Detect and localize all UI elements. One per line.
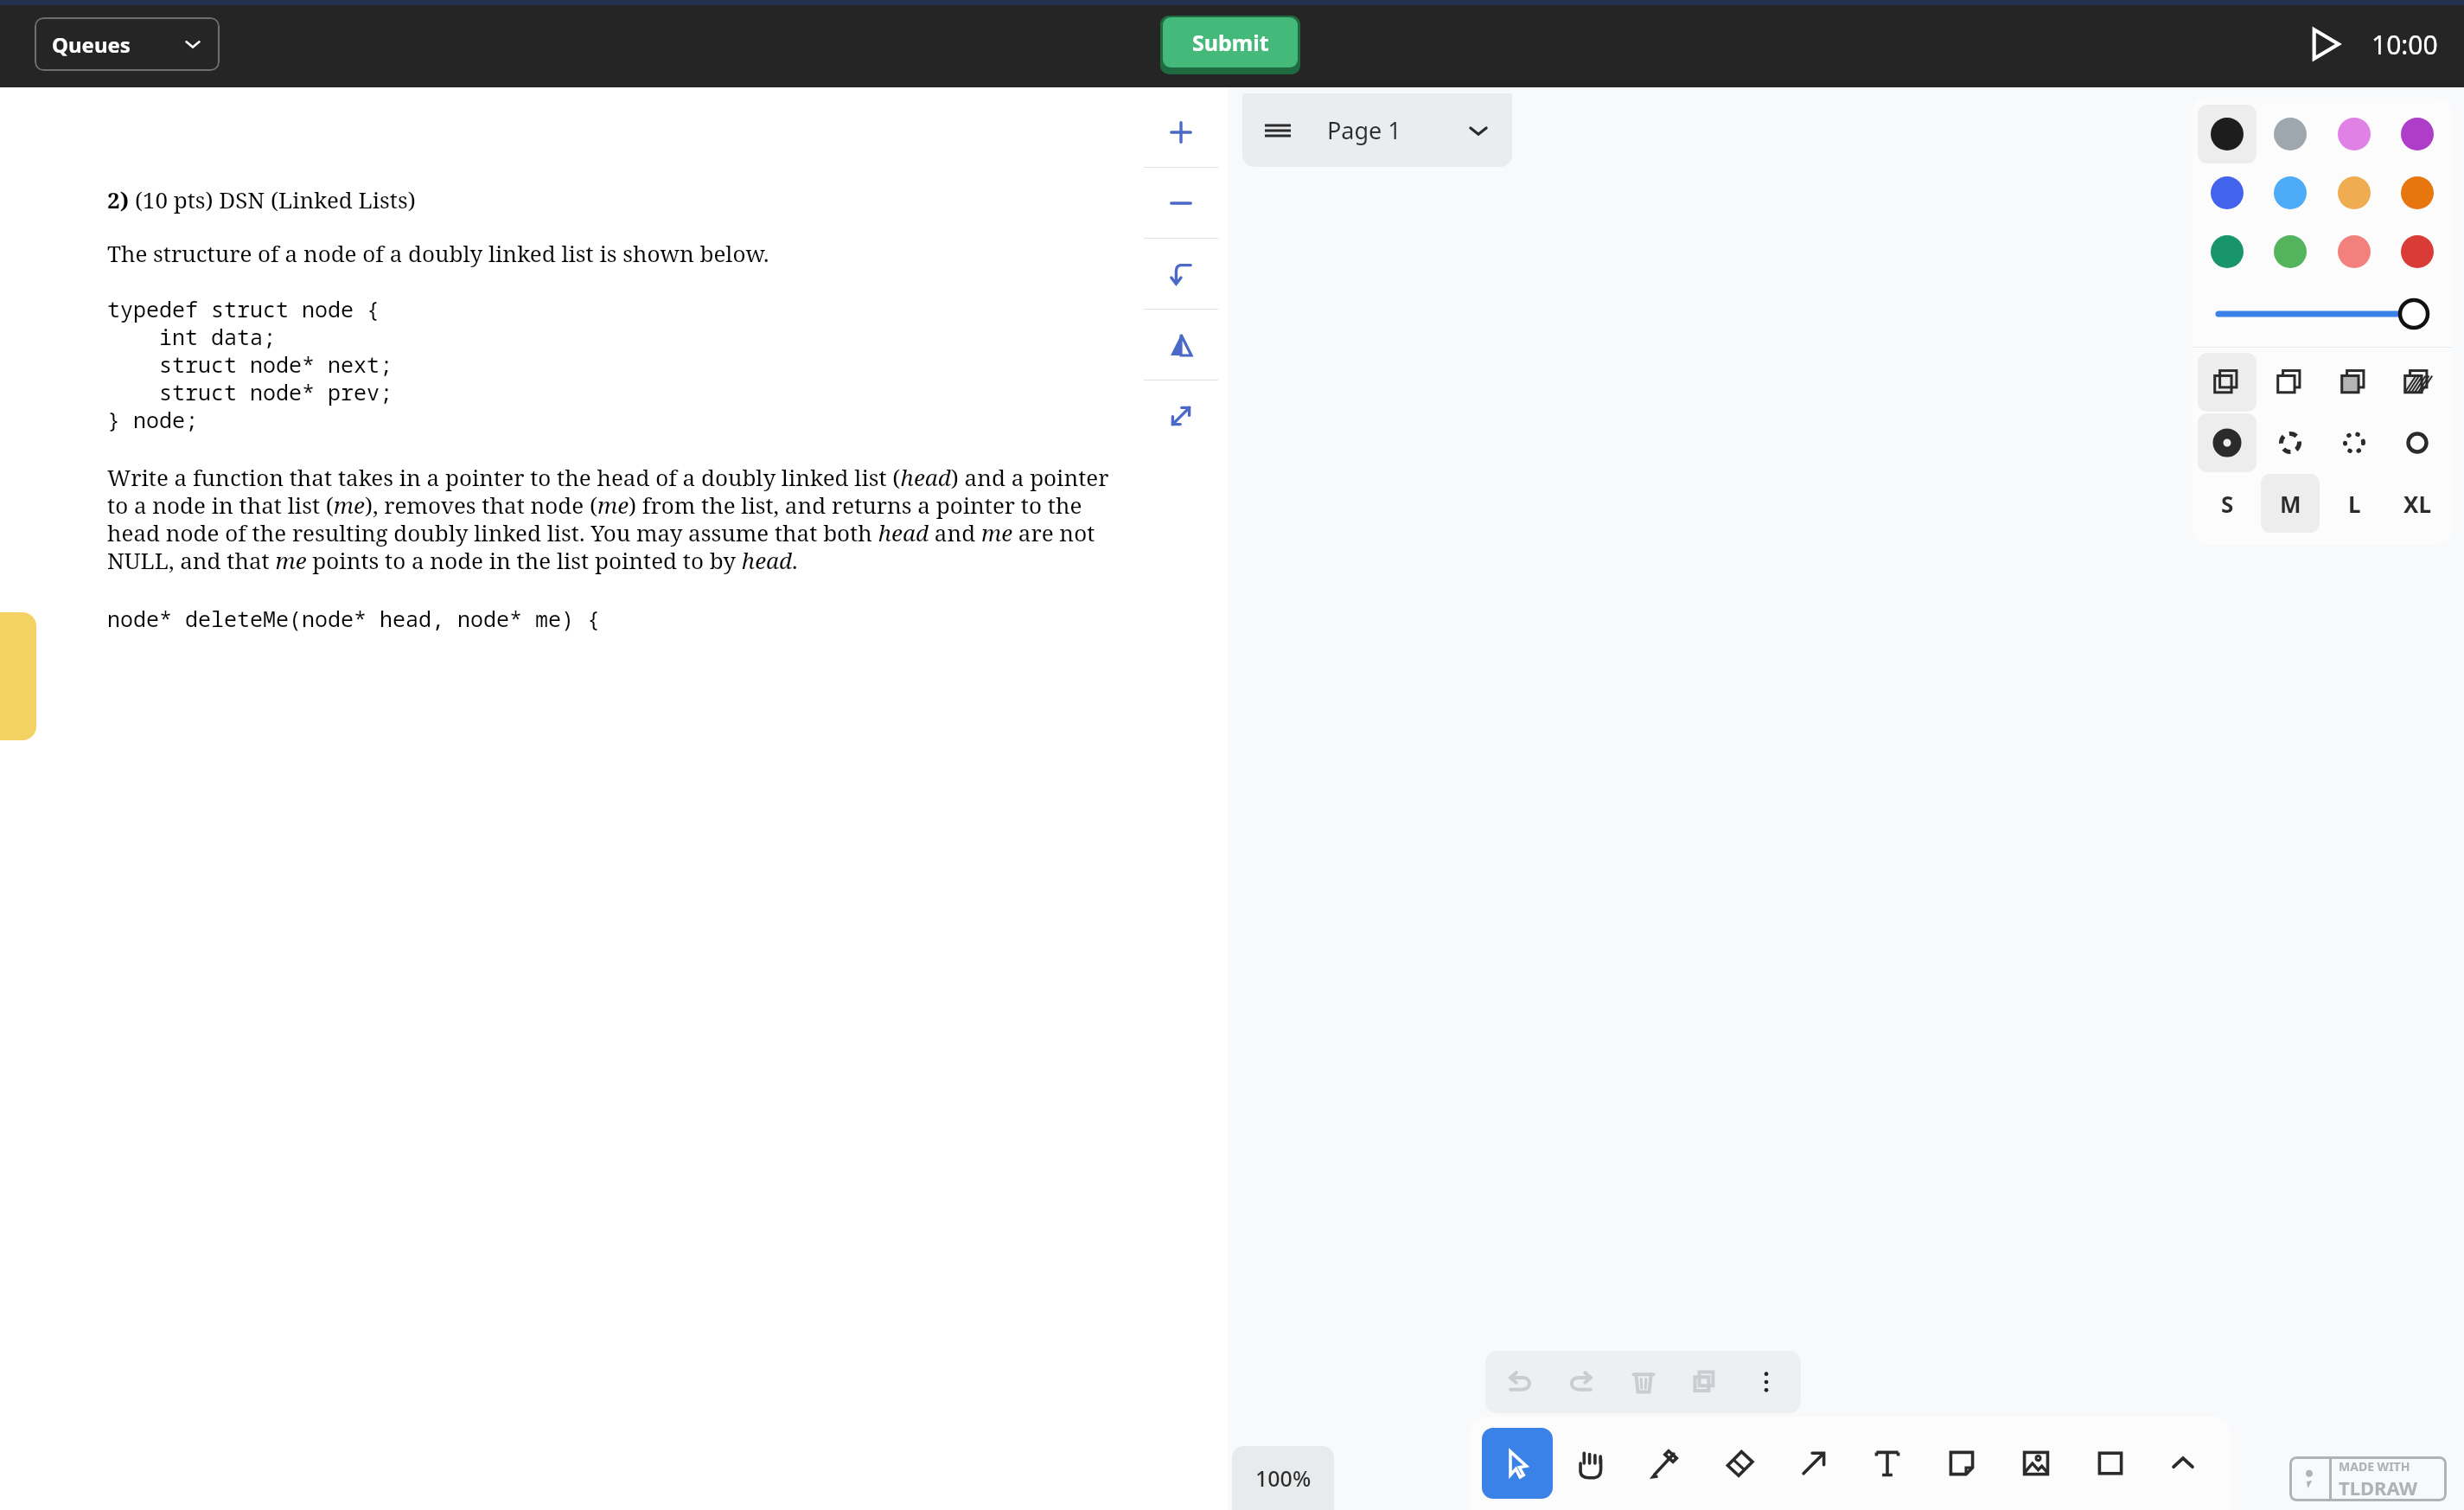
staticText: The structure of a node of a doubly link…: [107, 238, 769, 268]
button[interactable]: Mirror: [1144, 310, 1218, 380]
button[interactable]: More options: [1739, 1355, 1793, 1409]
button[interactable]: Hand tool: [1553, 1428, 1627, 1499]
button[interactable]: Color: [2198, 105, 2257, 163]
staticText: typedef struct node { int data; struct n…: [107, 294, 393, 434]
button[interactable]: Color: [2261, 105, 2320, 163]
staticText: MADE WITH: [2339, 1458, 2410, 1475]
staticText: S: [2221, 489, 2234, 519]
button[interactable]: Color: [2325, 163, 2384, 222]
button[interactable]: Color: [2198, 163, 2257, 222]
button[interactable]: Color: [2388, 222, 2447, 281]
button[interactable]: Color: [2325, 222, 2384, 281]
button[interactable]: Fullscreen: [1144, 381, 1218, 451]
button[interactable]: Color: [2325, 105, 2384, 163]
button[interactable]: Fill style: [2198, 353, 2257, 412]
staticText: L: [2348, 489, 2361, 519]
button[interactable]: Made with tldraw: [2289, 1456, 2447, 1501]
staticText: Submit: [1192, 28, 1269, 57]
button[interactable]: Zoom out: [1144, 168, 1218, 238]
button[interactable]: Dash style: [2325, 413, 2384, 472]
button[interactable]: Submit: [1160, 16, 1300, 74]
staticText: XL: [2403, 489, 2431, 519]
staticText: Queues: [52, 30, 131, 59]
button[interactable]: Fill style: [2325, 353, 2384, 412]
button[interactable]: Color: [2198, 222, 2257, 281]
button[interactable]: XL: [2388, 474, 2447, 533]
staticText: node* deleteMe(node* head, node* me) {: [107, 604, 601, 633]
button[interactable]: More tools: [2148, 1428, 2218, 1499]
button[interactable]: Dash style: [2198, 413, 2257, 472]
button[interactable]: Draw tool: [1627, 1428, 1701, 1499]
staticText: Write a function that takes in a pointer…: [107, 462, 1127, 576]
button[interactable]: Undo: [1493, 1355, 1547, 1409]
staticText: M: [2280, 489, 2301, 519]
staticText: 2) (10 pts) DSN (Linked Lists): [107, 184, 416, 214]
button[interactable]: Note tool: [1925, 1428, 1999, 1499]
button[interactable]: Delete: [1617, 1355, 1670, 1409]
button[interactable]: Color: [2261, 163, 2320, 222]
button[interactable]: L: [2325, 474, 2384, 533]
button[interactable]: Zoom in: [1144, 97, 1218, 167]
button[interactable]: Image tool: [1999, 1428, 2073, 1499]
button[interactable]: 100%: [1232, 1446, 1334, 1510]
button[interactable]: Bookmark tab: [0, 612, 36, 740]
button[interactable]: Queues: [35, 17, 220, 71]
staticText: Page 1: [1327, 114, 1401, 146]
button[interactable]: Color: [2388, 163, 2447, 222]
staticText: 10:00: [2371, 27, 2438, 62]
button[interactable]: Duplicate: [1678, 1355, 1732, 1409]
button[interactable]: Select tool: [1482, 1428, 1553, 1499]
button[interactable]: Dash style: [2261, 413, 2320, 472]
staticText: 100%: [1255, 1463, 1312, 1493]
button[interactable]: Eraser tool: [1701, 1428, 1776, 1499]
button[interactable]: Play: [2301, 20, 2349, 68]
button[interactable]: Redo: [1554, 1355, 1608, 1409]
staticText: TLDRAW: [2339, 1475, 2418, 1500]
button[interactable]: Rectangle tool: [2073, 1428, 2148, 1499]
button[interactable]: Fill style: [2388, 353, 2447, 412]
button[interactable]: Page 1: [1242, 93, 1512, 167]
button[interactable]: Reset: [1144, 239, 1218, 309]
button[interactable]: Dash style: [2388, 413, 2447, 472]
button[interactable]: S: [2198, 474, 2257, 533]
button[interactable]: M: [2261, 474, 2320, 533]
button[interactable]: Opacity: [2193, 281, 2452, 347]
button[interactable]: Text tool: [1850, 1428, 1925, 1499]
button[interactable]: Arrow tool: [1776, 1428, 1850, 1499]
button[interactable]: Color: [2388, 105, 2447, 163]
button[interactable]: Fill style: [2261, 353, 2320, 412]
button[interactable]: Color: [2261, 222, 2320, 281]
